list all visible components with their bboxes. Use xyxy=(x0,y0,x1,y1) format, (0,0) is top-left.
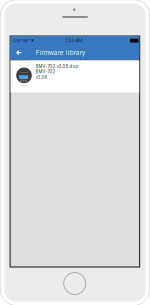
staticText: BMV-702 xyxy=(36,69,56,74)
staticText: Firmware library xyxy=(36,49,86,56)
staticText: Carrier xyxy=(13,38,30,43)
button[interactable]: BMV-702 v3.08.dup xyxy=(11,60,139,92)
staticText: 1:33 AM xyxy=(65,38,82,43)
staticText: v3.08 xyxy=(36,75,48,80)
staticText: BMV-702 v3.08.dup xyxy=(36,64,79,69)
button[interactable]: Back xyxy=(11,45,27,60)
